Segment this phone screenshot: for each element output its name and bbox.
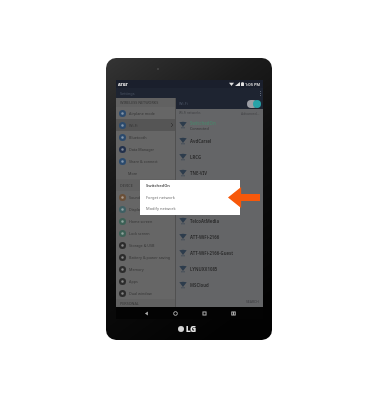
button[interactable]: Dual window [116, 287, 175, 299]
staticText: TelcoAtMedia [190, 218, 219, 224]
staticText: SEARCH [246, 299, 259, 304]
staticText: Data Manager [129, 147, 155, 152]
button[interactable]: ATT-Guest [176, 197, 263, 213]
button[interactable]: Memory [116, 263, 175, 275]
staticText: Forget network [146, 195, 175, 200]
staticText: PERSONAL [120, 301, 139, 306]
button[interactable]: Storage & USB [116, 239, 175, 251]
staticText: 1:05 PM [245, 82, 261, 87]
button[interactable]: Share & connect [116, 155, 175, 167]
staticText: AT&T [118, 82, 128, 87]
button[interactable]: MSCloud [176, 277, 263, 293]
staticText: ATT-WiFi-2166-Guest [190, 250, 234, 256]
staticText: Apps [129, 279, 138, 284]
staticText: Lock screen [129, 231, 150, 236]
button[interactable]: Forget network [140, 192, 240, 203]
button[interactable]: Wi-Fi [116, 119, 175, 131]
staticText: Wi-Fi networks [179, 111, 201, 115]
staticText: Bluetooth [129, 135, 147, 140]
button[interactable]: Home screen [116, 215, 175, 227]
button[interactable]: Display [116, 203, 175, 215]
staticText: Storage & USB [129, 243, 155, 248]
staticText: Sound [129, 195, 141, 200]
button[interactable]: Dual window [228, 308, 239, 319]
button[interactable]: Bluetooth [116, 131, 175, 143]
button[interactable]: TelcoAtMedia [176, 213, 263, 229]
staticText: ATT-WiFi-2166 [190, 234, 220, 240]
staticText: Modify network [146, 206, 176, 211]
staticText: AvdCarsel [190, 138, 212, 144]
button[interactable]: Battery & power saving [116, 251, 175, 263]
button[interactable]: Wi-Fi on [247, 99, 261, 108]
button[interactable]: Lock screen [116, 227, 175, 239]
staticText: Wi-Fi [129, 123, 138, 128]
button[interactable]: More [116, 167, 175, 179]
button[interactable]: Back [141, 308, 152, 319]
button[interactable]: LYNUXX1085 [176, 261, 263, 277]
button[interactable]: Data Manager [116, 143, 175, 155]
button[interactable]: ATT-WiFi-2166-Guest [176, 245, 263, 261]
staticText: LG [186, 323, 197, 334]
button[interactable]: ATT-WiFi-2166 [176, 229, 263, 245]
staticText: Memory [129, 267, 144, 272]
button[interactable]: LRCG [176, 149, 263, 165]
button[interactable]: AvdCarsel [176, 133, 263, 149]
staticText: Display [129, 207, 142, 212]
staticText: Settings [120, 91, 135, 96]
staticText: Dual window [129, 291, 152, 296]
button[interactable]: Sound [116, 191, 175, 203]
staticText: Home screen [129, 219, 153, 224]
staticText: LRCG [190, 154, 202, 160]
staticText: Battery & power saving [129, 255, 171, 260]
button[interactable]: Modify network [140, 203, 240, 214]
button[interactable]: TNE-VIV [176, 165, 263, 181]
staticText: Connected [190, 126, 209, 131]
staticText: SwitchedOn [190, 120, 216, 126]
staticText: TNE-VIV [190, 170, 208, 176]
staticText: WIRELESS NETWORKS [120, 100, 159, 105]
staticText: DEVICE [120, 183, 133, 188]
staticText: Wi-Fi [179, 101, 188, 106]
button[interactable]: Home [170, 308, 181, 319]
button[interactable]: Apps [116, 275, 175, 287]
staticText: Advanced... [241, 111, 260, 116]
staticText: MSCloud [190, 282, 209, 288]
staticText: More [128, 171, 138, 176]
button[interactable]: Recent apps [199, 308, 210, 319]
button[interactable]: Airplane mode [116, 107, 175, 119]
button[interactable]: NetSpot-5G [176, 181, 263, 197]
button[interactable]: SwitchedOn [176, 117, 263, 133]
staticText: LYNUXX1085 [190, 266, 218, 272]
staticText: Share & connect [129, 159, 158, 164]
staticText: Airplane mode [129, 111, 155, 116]
staticText: SwitchedOn [146, 183, 170, 188]
